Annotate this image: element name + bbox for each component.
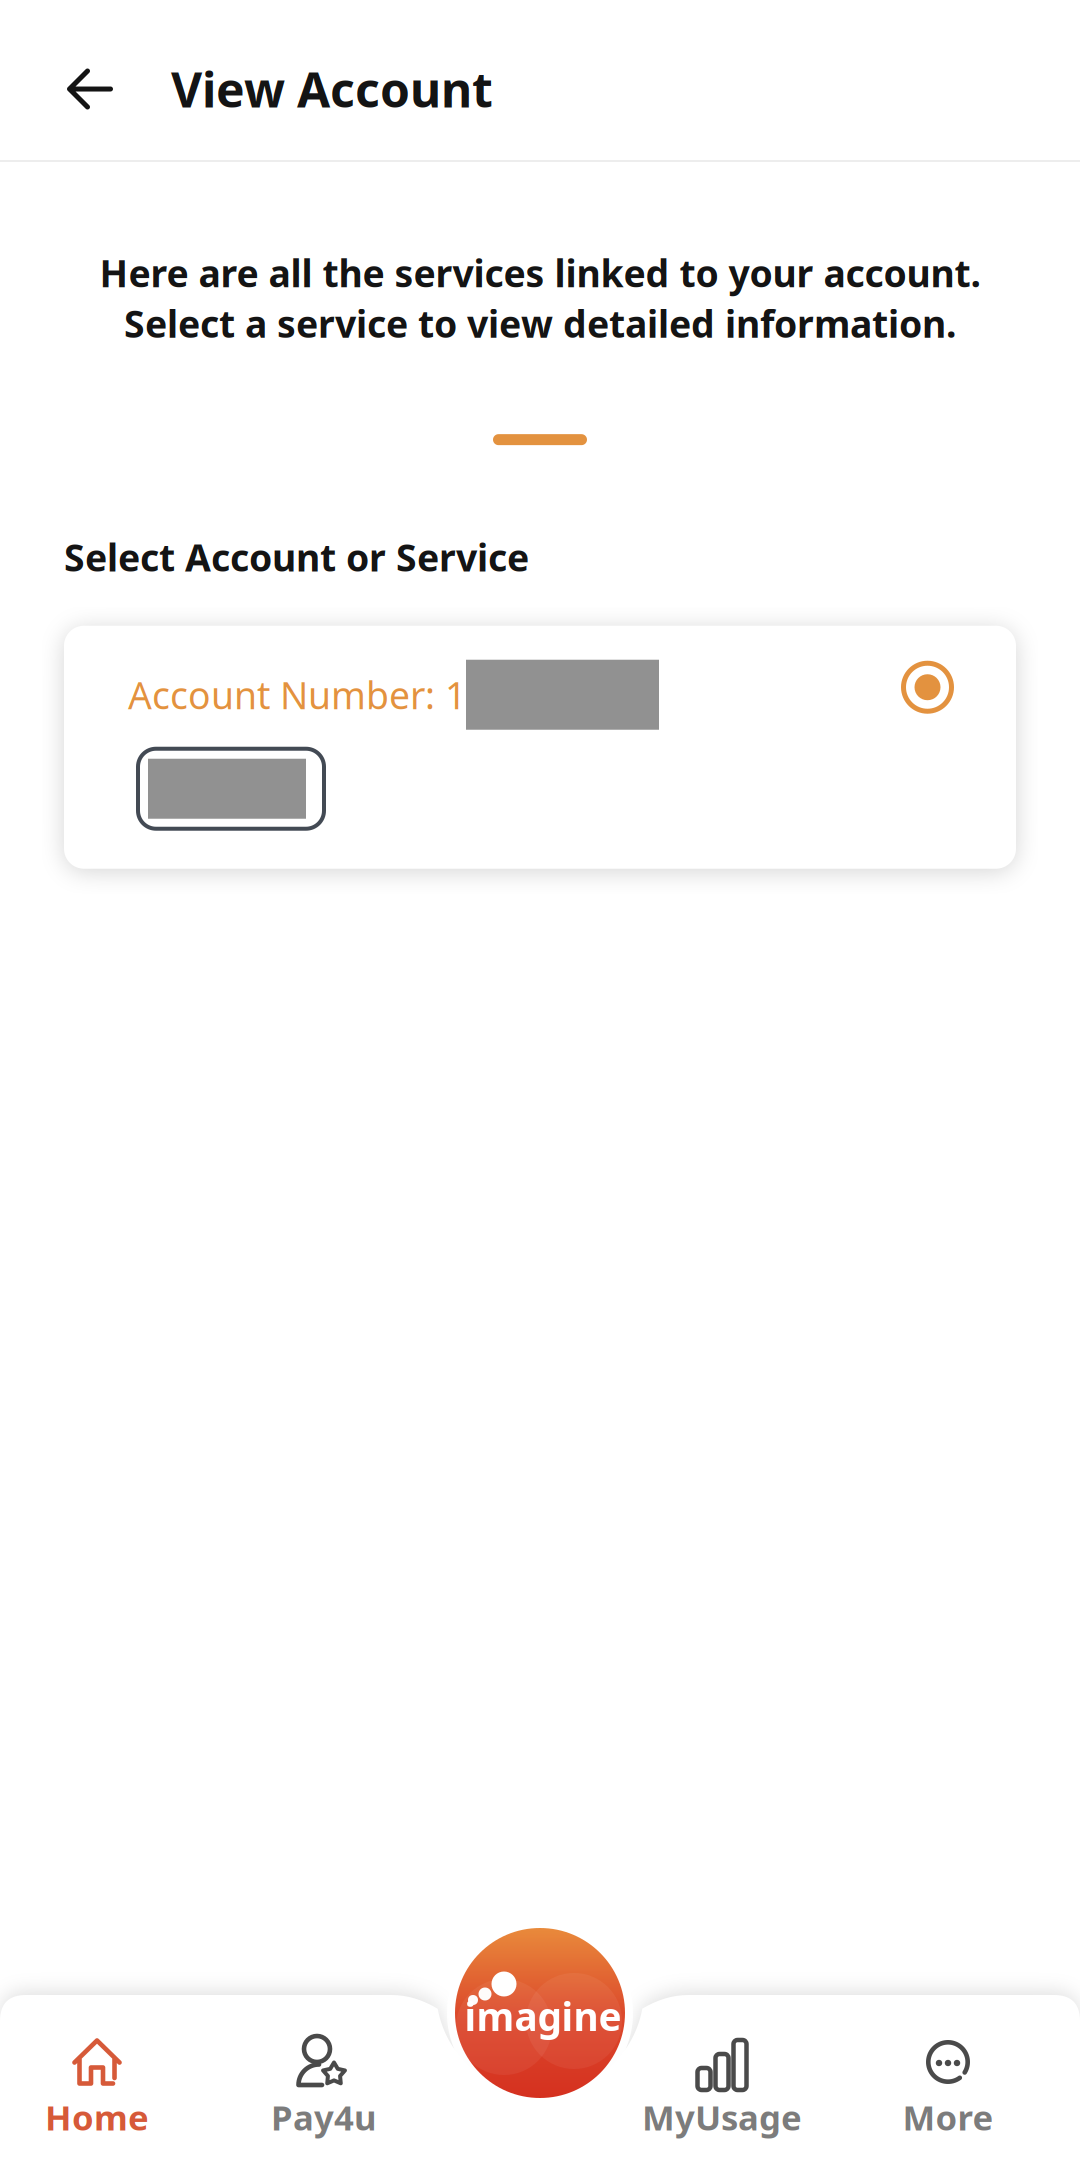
button[interactable]: Pay4u <box>224 2037 424 2140</box>
button[interactable]: Home <box>0 2037 197 2140</box>
staticText: View Account <box>171 57 493 121</box>
staticText: Here are all the services linked to your… <box>99 248 980 298</box>
button[interactable]: Account Number: 1 <box>64 626 1016 869</box>
button[interactable]: MyUsage <box>622 2037 822 2140</box>
staticText: Select Account or Service <box>64 532 529 582</box>
staticText: imagine <box>464 1990 621 2042</box>
button[interactable]: Back <box>46 45 134 133</box>
staticText: Select a service to view detailed inform… <box>124 299 956 348</box>
staticText: Home <box>45 2094 149 2140</box>
staticText: Pay4u <box>271 2094 377 2140</box>
staticText: Account Number: 1 <box>128 670 466 719</box>
staticText: More <box>902 2094 993 2140</box>
button[interactable]: More <box>848 2037 1048 2140</box>
staticText: MyUsage <box>642 2094 802 2140</box>
